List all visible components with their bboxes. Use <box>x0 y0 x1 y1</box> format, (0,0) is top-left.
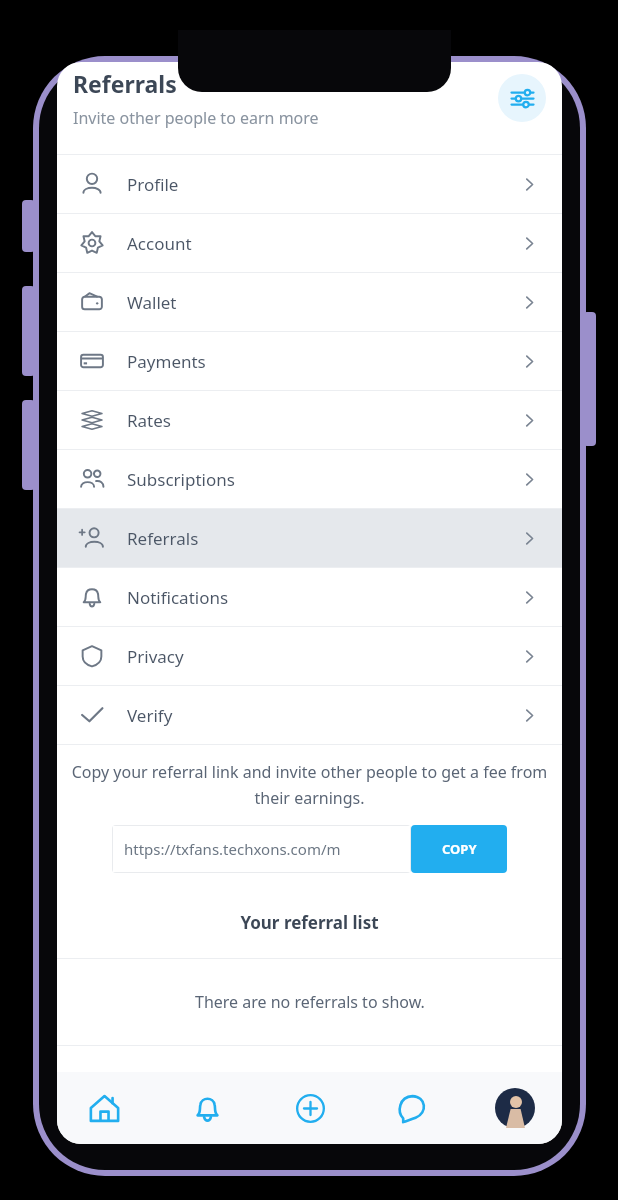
staticText: Referrals <box>127 527 199 550</box>
button[interactable]: Verify <box>57 686 562 744</box>
staticText: https://txfans.techxons.com/m <box>124 839 341 859</box>
staticText: Your referral list <box>57 911 562 934</box>
staticText: There are no referrals to show. <box>195 991 425 1013</box>
button[interactable]: Privacy <box>57 627 562 685</box>
button[interactable]: Home <box>77 1081 131 1135</box>
staticText: Payments <box>127 350 206 373</box>
button[interactable]: Notifications <box>180 1081 234 1135</box>
button[interactable]: Filters <box>498 74 546 122</box>
button[interactable]: Create <box>283 1081 337 1135</box>
staticText: Copy your referral link and invite other… <box>71 761 548 809</box>
button[interactable]: https://txfans.techxons.com/m <box>112 825 411 873</box>
button[interactable]: Payments <box>57 332 562 390</box>
button[interactable]: Messages <box>385 1081 439 1135</box>
staticText: Verify <box>127 704 173 727</box>
staticText: Referrals <box>73 68 177 99</box>
staticText: Subscriptions <box>127 468 235 491</box>
button[interactable]: Profile <box>488 1081 542 1135</box>
button[interactable]: Account <box>57 214 562 272</box>
staticText: Wallet <box>127 291 177 314</box>
staticText: Rates <box>127 409 171 432</box>
staticText: COPY <box>442 840 477 858</box>
button[interactable]: Profile <box>57 155 562 213</box>
staticText: Invite other people to earn more <box>73 107 319 129</box>
staticText: Privacy <box>127 645 184 668</box>
staticText: Account <box>127 232 192 255</box>
button[interactable]: Rates <box>57 391 562 449</box>
button[interactable]: Referrals <box>57 509 562 567</box>
button[interactable]: Subscriptions <box>57 450 562 508</box>
staticText: Notifications <box>127 586 229 609</box>
button[interactable]: Wallet <box>57 273 562 331</box>
button[interactable]: Notifications <box>57 568 562 626</box>
staticText: Profile <box>127 173 179 196</box>
button[interactable]: COPY <box>411 825 507 873</box>
